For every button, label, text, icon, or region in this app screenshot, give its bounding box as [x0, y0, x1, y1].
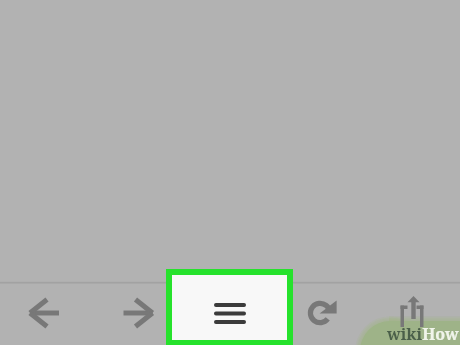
button[interactable]: Forward [109, 290, 167, 336]
button[interactable]: Back [15, 290, 74, 336]
staticText: wikiHow [387, 323, 459, 345]
button[interactable]: Menu [166, 269, 293, 345]
button[interactable]: Share [384, 290, 440, 336]
button[interactable]: Reload [294, 290, 350, 336]
